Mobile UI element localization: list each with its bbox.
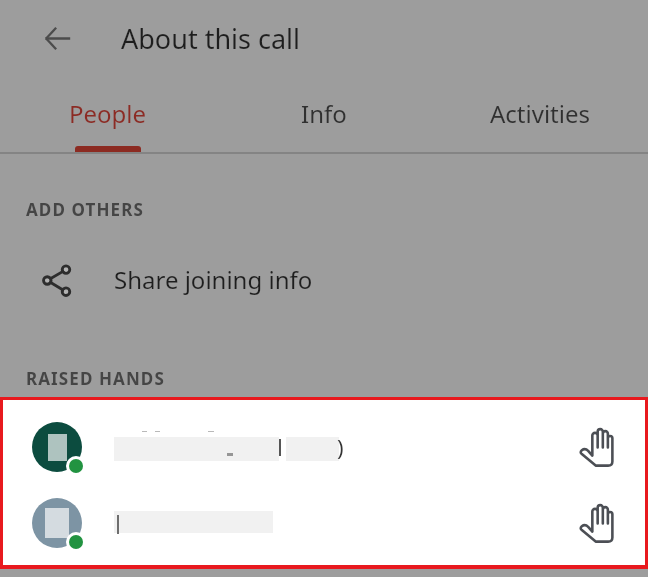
staticText: Activities	[490, 97, 590, 130]
staticText: Share joining info	[114, 263, 313, 296]
button[interactable]: Lower hand	[569, 420, 625, 476]
button[interactable]: People	[0, 80, 216, 152]
staticText: )	[337, 432, 344, 462]
staticText: People	[69, 97, 147, 130]
button[interactable]: Share joining info	[0, 246, 648, 312]
button[interactable]: Activities	[432, 80, 648, 152]
staticText: ADD OTHERS	[26, 198, 144, 221]
staticText: RAISED HANDS	[26, 367, 165, 390]
button[interactable]: Info	[216, 80, 432, 152]
staticText: Info	[301, 97, 347, 130]
staticText: About this call	[121, 20, 301, 57]
button[interactable]: Lower hand	[569, 496, 625, 552]
button[interactable]: Lower hand	[3, 495, 645, 570]
button[interactable]: )	[3, 419, 645, 494]
button[interactable]: Back	[33, 14, 81, 62]
